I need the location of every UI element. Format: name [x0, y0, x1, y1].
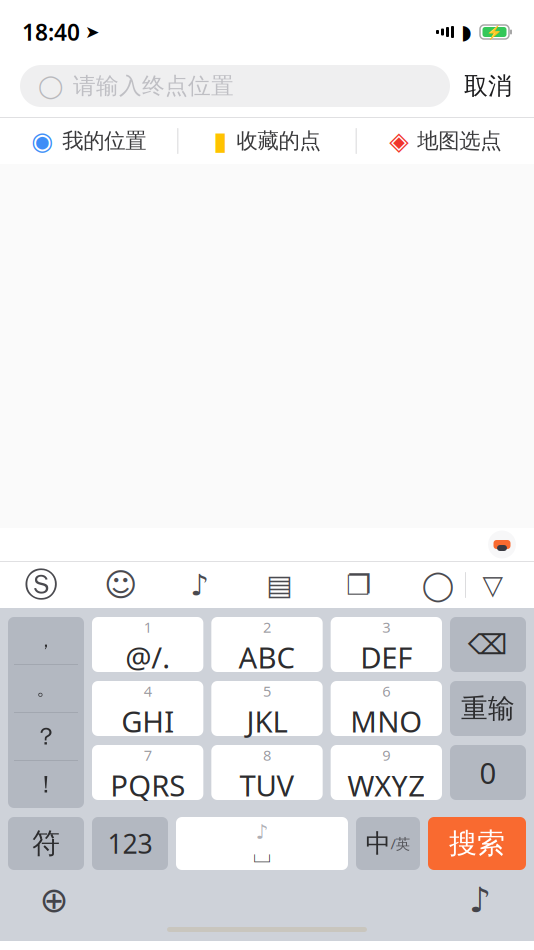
staticText: ◉ — [31, 127, 53, 155]
button[interactable]: 输入法设置 — [14, 563, 68, 607]
button[interactable]: 收起键盘 — [466, 563, 520, 607]
button[interactable]: 语音输入 — [173, 563, 227, 607]
staticText: 收藏的点 — [236, 128, 320, 154]
staticText: 地图选点 — [417, 128, 501, 154]
button[interactable]: 0 — [450, 745, 526, 800]
button[interactable]: 5 — [211, 681, 323, 736]
staticText: 搜索 — [449, 826, 505, 861]
button[interactable]: 键盘布局 — [252, 563, 306, 607]
staticText: GHI — [121, 702, 174, 741]
staticText: 中 — [365, 828, 390, 859]
staticText: ？ — [34, 722, 58, 751]
button[interactable]: 1 — [92, 617, 203, 672]
staticText: ➤ — [85, 22, 100, 42]
button[interactable]: ◈ — [357, 118, 534, 164]
staticText: ◯ — [38, 73, 63, 99]
button[interactable]: 表情 — [93, 563, 147, 607]
staticText: TUV — [239, 766, 294, 805]
button[interactable]: 2 — [211, 617, 323, 672]
staticText: ❐ — [346, 569, 371, 601]
staticText: ⚡ — [486, 24, 503, 40]
staticText: ⊕ — [39, 880, 68, 920]
button[interactable]: 9 — [331, 745, 442, 800]
staticText: ▤ — [266, 569, 292, 601]
staticText: @/. — [125, 638, 170, 677]
staticText: ♪ — [255, 821, 268, 843]
button[interactable]: 4 — [92, 681, 203, 736]
button[interactable]: 7 — [92, 745, 203, 800]
staticText: ABC — [238, 638, 295, 677]
staticText: ▮ — [213, 127, 227, 155]
button[interactable]: ▮ — [178, 118, 356, 164]
button[interactable]: 符 — [8, 817, 84, 870]
button[interactable]: 3 — [331, 617, 442, 672]
button[interactable]: ◉ — [0, 118, 177, 164]
staticText: 0 — [479, 753, 496, 792]
staticText: DEF — [360, 638, 412, 677]
staticText: ◈ — [389, 127, 408, 155]
staticText: 8 — [263, 745, 271, 765]
button[interactable]: 搜索 — [428, 817, 526, 870]
button[interactable]: 取消 — [450, 65, 526, 107]
staticText: 3 — [382, 617, 390, 637]
staticText: ⌫ — [468, 629, 508, 660]
staticText: ◯ — [421, 568, 454, 602]
staticText: 请输入终点位置 — [73, 72, 234, 100]
staticText: 4 — [144, 681, 152, 701]
staticText: WXYZ — [347, 766, 425, 805]
button[interactable]: 空格 — [176, 817, 348, 870]
staticText: PQRS — [110, 766, 185, 805]
staticText: ⌴ — [253, 844, 271, 866]
button[interactable]: 8 — [211, 745, 323, 800]
staticText: 我的位置 — [62, 128, 146, 154]
button[interactable]: 删除 — [450, 617, 526, 672]
button[interactable]: 翻译 — [332, 563, 386, 607]
staticText: 重输 — [461, 692, 515, 725]
button[interactable]: 中 — [356, 817, 420, 870]
button[interactable]: 语音输入 — [452, 878, 508, 922]
staticText: ◗ — [461, 21, 472, 43]
staticText: MNO — [350, 702, 422, 741]
staticText: 符 — [32, 826, 60, 861]
button[interactable]: 切换键盘 — [26, 878, 82, 922]
staticText: 9 — [382, 745, 390, 765]
staticText: 5 — [263, 681, 271, 701]
staticText: 6 — [382, 681, 390, 701]
staticText: ☺ — [104, 567, 137, 603]
button[interactable]: ？ — [8, 713, 84, 760]
staticText: 18:40 — [22, 17, 80, 47]
staticText: ♪ — [190, 568, 209, 602]
button[interactable]: 重输 — [450, 681, 526, 736]
button[interactable]: 智能助手 — [480, 528, 524, 560]
staticText: 1 — [144, 617, 152, 637]
staticText: ， — [36, 629, 55, 652]
button[interactable]: ， — [8, 617, 84, 664]
staticText: ♪ — [469, 880, 491, 920]
button[interactable]: ◯ — [20, 65, 450, 107]
button[interactable]: 。 — [8, 665, 84, 712]
button[interactable]: ！ — [8, 761, 84, 808]
staticText: Ⓢ — [24, 564, 57, 605]
staticText: JKL — [246, 702, 287, 741]
staticText: 7 — [144, 745, 152, 765]
staticText: 。 — [36, 677, 55, 700]
staticText: ▽ — [482, 570, 503, 600]
staticText: /英 — [390, 834, 410, 853]
button[interactable]: 123 — [92, 817, 168, 870]
staticText: 取消 — [464, 71, 512, 101]
staticText: 123 — [107, 826, 152, 861]
staticText: ！ — [34, 770, 58, 799]
button[interactable]: 搜索 — [411, 563, 465, 607]
staticText: 2 — [263, 617, 271, 637]
button[interactable]: 6 — [331, 681, 442, 736]
